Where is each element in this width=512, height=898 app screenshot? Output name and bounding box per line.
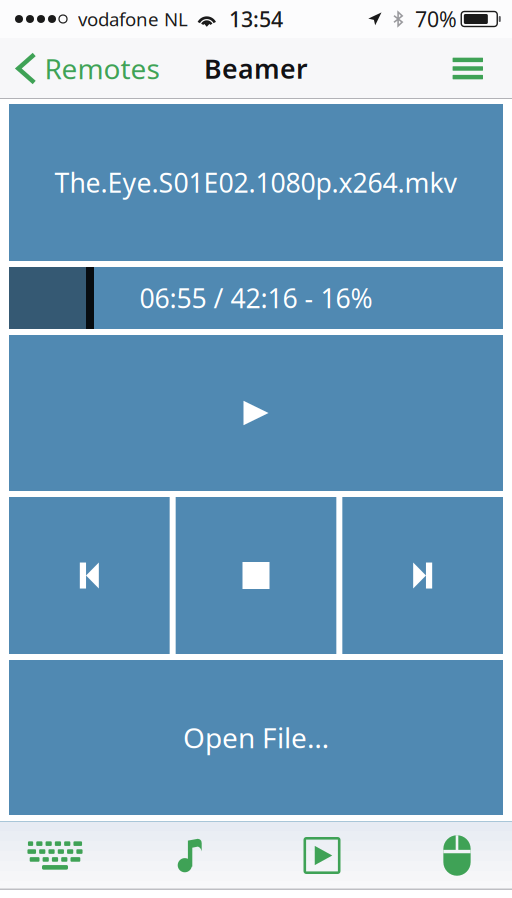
button[interactable]: Remotes	[0, 46, 169, 90]
staticText: Remotes	[44, 50, 159, 87]
button[interactable]: 06:55 / 42:16 - 16%	[9, 267, 503, 329]
staticText: 06:55 / 42:16 - 16%	[139, 280, 372, 316]
button[interactable]: Music	[138, 821, 242, 889]
button[interactable]: Play	[9, 335, 503, 491]
button[interactable]: Previous	[9, 497, 170, 654]
button[interactable]: Menu	[437, 46, 512, 90]
button[interactable]: Mouse	[402, 821, 512, 889]
staticText: The.Eye.S01E02.1080p.x264.mkv	[54, 165, 457, 200]
button[interactable]: Keyboard	[0, 821, 110, 889]
staticText: Open File…	[183, 719, 329, 756]
button[interactable]: Stop	[176, 497, 336, 654]
button[interactable]: The.Eye.S01E02.1080p.x264.mkv	[9, 104, 503, 261]
staticText: vodafone NL	[78, 7, 188, 31]
button[interactable]: Next	[342, 497, 503, 654]
button[interactable]: Video	[270, 821, 374, 889]
staticText: 70%	[415, 5, 457, 33]
staticText: 13:54	[229, 5, 283, 33]
button[interactable]: Open File…	[9, 660, 503, 815]
staticText: Beamer	[204, 51, 308, 86]
